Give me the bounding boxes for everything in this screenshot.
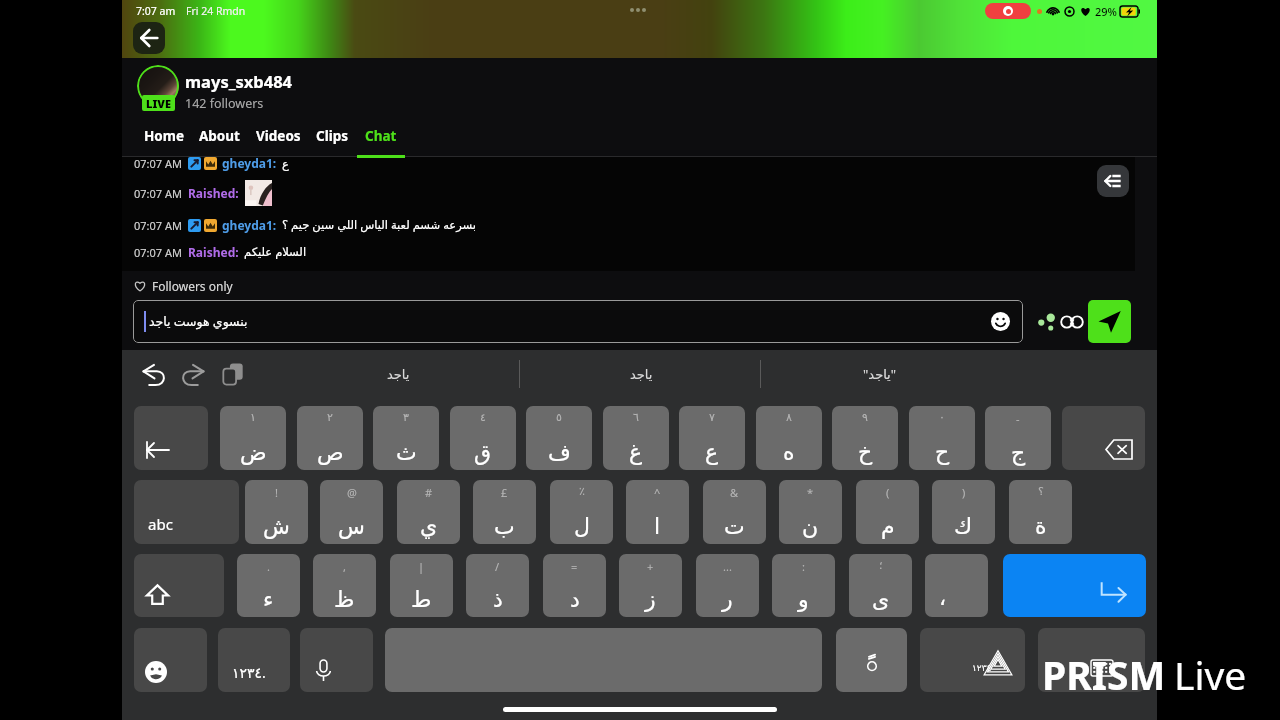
button[interactable]: ؛ bbox=[849, 554, 912, 617]
button[interactable]: Clipboard bbox=[219, 360, 247, 388]
button[interactable]: ( bbox=[856, 480, 919, 544]
button[interactable]: + bbox=[619, 554, 682, 617]
button[interactable]: ٣ bbox=[373, 406, 439, 470]
staticText: # bbox=[425, 485, 433, 500]
staticText: 07:07 AM bbox=[134, 218, 182, 233]
staticText: ي bbox=[420, 514, 438, 540]
button[interactable]: ١ bbox=[220, 406, 286, 470]
button[interactable]: ٤ bbox=[450, 406, 516, 470]
staticText: abc bbox=[148, 514, 173, 534]
button[interactable]: tab bbox=[134, 406, 208, 470]
staticText: ياجد bbox=[630, 367, 653, 382]
button[interactable]: About bbox=[190, 127, 248, 158]
button[interactable]: , bbox=[313, 554, 376, 617]
button[interactable]: = bbox=[543, 554, 606, 617]
button[interactable]: - bbox=[985, 406, 1051, 470]
button[interactable]: mic bbox=[300, 628, 373, 692]
button[interactable]: "ياجد" bbox=[820, 358, 940, 390]
staticText: ط bbox=[411, 587, 432, 613]
button[interactable]: ٧ bbox=[679, 406, 745, 470]
button[interactable]: ياجد bbox=[581, 358, 701, 390]
button[interactable]: kbd bbox=[1038, 628, 1145, 692]
button[interactable]: ! bbox=[245, 480, 308, 544]
button[interactable]: ٨ bbox=[756, 406, 822, 470]
staticText: & bbox=[730, 485, 739, 500]
staticText: @ bbox=[347, 485, 357, 500]
button[interactable]: . bbox=[237, 554, 300, 617]
staticText: ٢ bbox=[327, 411, 333, 424]
staticText: / bbox=[495, 559, 500, 574]
button[interactable]: بنسوي هوست ياجد bbox=[133, 300, 1023, 343]
button[interactable]: ٩ bbox=[832, 406, 898, 470]
button[interactable]: ٪ bbox=[550, 480, 613, 544]
staticText: ى bbox=[872, 587, 890, 613]
staticText: ٧ bbox=[709, 411, 715, 424]
button[interactable]: ياجد bbox=[338, 358, 458, 390]
button[interactable]: Undo bbox=[139, 360, 169, 390]
button[interactable]: & bbox=[703, 480, 766, 544]
button[interactable]: Chat bbox=[356, 127, 406, 158]
button[interactable]: ، bbox=[925, 554, 988, 617]
button[interactable]: abc bbox=[134, 480, 239, 544]
button[interactable]: ) bbox=[932, 480, 995, 544]
staticText: Videos bbox=[256, 127, 301, 145]
button[interactable]: Collapse chat bbox=[1097, 165, 1129, 197]
staticText: ل bbox=[574, 514, 590, 540]
button[interactable]: Clips bbox=[308, 127, 356, 158]
button[interactable]: ١٢٣٤. bbox=[218, 628, 290, 692]
button[interactable]: bksp bbox=[1062, 406, 1145, 470]
button[interactable]: Send bbox=[1088, 300, 1131, 343]
staticText: : bbox=[802, 559, 805, 574]
staticText: ! bbox=[275, 485, 278, 500]
staticText: بنسوي هوست ياجد bbox=[149, 313, 248, 330]
staticText: د bbox=[570, 587, 580, 613]
staticText: gheyda1: bbox=[222, 155, 277, 171]
button[interactable]: Stickers bbox=[1034, 308, 1061, 335]
staticText: ض bbox=[240, 440, 267, 466]
button[interactable]: ٦ bbox=[603, 406, 669, 470]
button[interactable]: ٢ bbox=[297, 406, 363, 470]
button[interactable]: emoji bbox=[134, 628, 207, 692]
staticText: About bbox=[199, 127, 240, 145]
button[interactable]: ... bbox=[696, 554, 759, 617]
button[interactable]: : bbox=[772, 554, 835, 617]
button[interactable]: Videos bbox=[246, 127, 310, 158]
staticText: ك bbox=[954, 514, 973, 540]
staticText: ج bbox=[1011, 440, 1026, 466]
staticText: 29% bbox=[1095, 4, 1117, 19]
button[interactable]: shift bbox=[134, 554, 224, 617]
staticText: س bbox=[338, 514, 365, 540]
staticText: ذ bbox=[493, 587, 503, 613]
staticText: ة bbox=[1035, 514, 1047, 540]
staticText: ظ bbox=[334, 587, 355, 613]
button[interactable]: globe bbox=[920, 628, 1025, 692]
button[interactable]: / bbox=[466, 554, 529, 617]
button[interactable]: Loop bbox=[1058, 308, 1085, 335]
button[interactable]: Home bbox=[136, 127, 192, 158]
staticText: ر bbox=[722, 587, 733, 613]
button[interactable]: £ bbox=[473, 480, 536, 544]
staticText: ( bbox=[886, 485, 890, 500]
button[interactable]: ؟ bbox=[1009, 480, 1072, 544]
staticText: ٨ bbox=[786, 411, 792, 424]
staticText: ١٢٣٤ bbox=[972, 663, 992, 673]
staticText: | bbox=[418, 559, 425, 574]
button[interactable]: enter bbox=[1003, 554, 1146, 617]
button[interactable]: # bbox=[397, 480, 460, 544]
button[interactable]: Redo bbox=[178, 360, 208, 390]
button[interactable]: | bbox=[390, 554, 453, 617]
staticText: Live bbox=[1174, 648, 1247, 701]
staticText: ق bbox=[474, 440, 492, 466]
staticText: ٣ bbox=[403, 411, 409, 424]
button[interactable]: ٥ bbox=[526, 406, 592, 470]
button[interactable]: @ bbox=[320, 480, 383, 544]
staticText: * bbox=[807, 485, 814, 500]
button[interactable]: * bbox=[779, 480, 842, 544]
staticText: Clips bbox=[316, 127, 349, 145]
button[interactable]: ٠ bbox=[909, 406, 975, 470]
button[interactable]: dot bbox=[836, 628, 907, 692]
staticText: 142 followers bbox=[185, 95, 264, 112]
button[interactable]: ^ bbox=[626, 480, 689, 544]
button[interactable]: Back bbox=[133, 22, 165, 54]
